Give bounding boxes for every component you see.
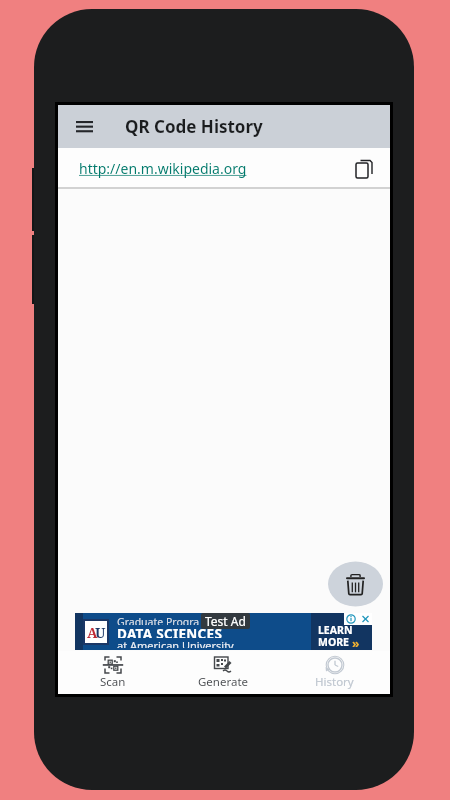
button[interactable]: [328, 561, 383, 607]
staticText: Generate: [198, 674, 249, 690]
staticText: at American University: [117, 638, 234, 648]
staticText: MORE: [318, 635, 352, 647]
button[interactable]: http://en.m.wikipedia.org: [58, 148, 390, 188]
staticText: A: [87, 623, 98, 642]
staticText: Graduate Progra: [117, 615, 200, 625]
staticText: »: [352, 635, 360, 647]
button[interactable]: Scan: [58, 651, 168, 694]
button[interactable]: [76, 120, 93, 133]
staticText: History: [315, 674, 354, 690]
button[interactable]: A: [75, 613, 372, 650]
staticText: Scan: [100, 674, 126, 690]
button[interactable]: History: [279, 651, 390, 694]
staticText: DATA SCIENCES: [117, 625, 223, 638]
staticText: U: [95, 623, 106, 642]
button[interactable]: Generate: [168, 651, 279, 694]
staticText: http://en.m.wikipedia.org: [79, 159, 247, 178]
staticText: LEARN: [318, 623, 353, 635]
staticText: QR Code History: [125, 115, 263, 138]
staticText: Test Ad: [205, 613, 246, 629]
